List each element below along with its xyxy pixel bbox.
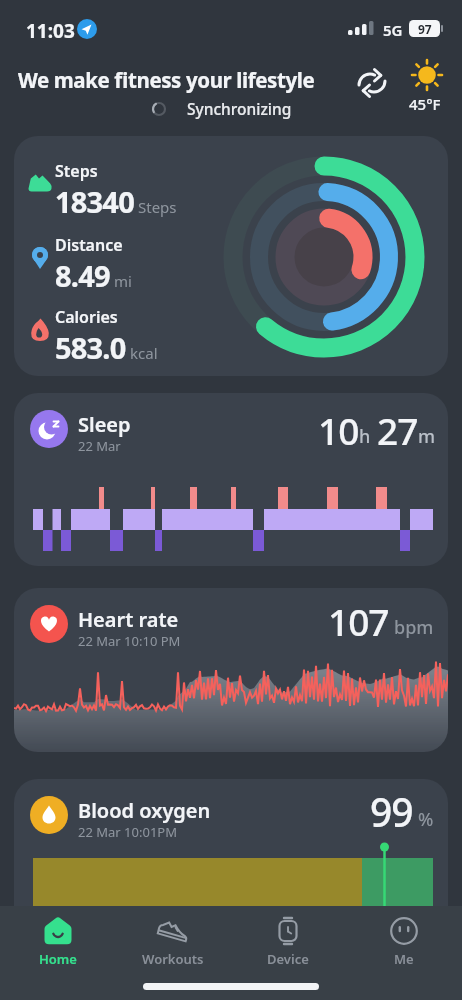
staticText: 5G (383, 20, 403, 40)
staticText: 99 (370, 785, 413, 838)
staticText: Home (39, 950, 77, 968)
staticText: 27 (377, 405, 418, 455)
button[interactable]: Blood oxygen (14, 779, 448, 949)
button[interactable]: Heart rate (14, 588, 448, 752)
staticText: Blood oxygen (78, 797, 211, 824)
staticText: 11:03 (26, 18, 75, 44)
staticText: 8.49 (55, 256, 110, 295)
button[interactable]: Sleep (14, 393, 448, 566)
staticText: 107 (328, 596, 389, 646)
button[interactable]: Steps (14, 136, 448, 376)
staticText: m (418, 424, 436, 449)
staticText: h (359, 424, 371, 449)
staticText: 97 (418, 21, 432, 37)
staticText: Distance (55, 234, 123, 256)
button[interactable]: 45°F (402, 58, 452, 114)
staticText: 10 (318, 405, 359, 455)
staticText: 22 Mar 10:01PM (78, 823, 177, 841)
staticText: % (418, 807, 434, 832)
staticText: 45°F (409, 94, 441, 114)
button[interactable]: Device (230, 912, 346, 968)
staticText: Heart rate (78, 606, 179, 633)
staticText: Synchronizing (187, 98, 292, 119)
staticText: 22 Mar (78, 437, 121, 455)
staticText: Steps (55, 160, 98, 182)
button[interactable]: Me (346, 912, 462, 968)
staticText: 18340 (55, 182, 134, 221)
staticText: Steps (138, 197, 177, 217)
staticText: Me (394, 950, 414, 968)
staticText: We make fitness your lifestyle (18, 66, 315, 94)
button[interactable]: Home (0, 912, 115, 968)
staticText: kcal (130, 343, 158, 363)
button[interactable] (356, 67, 388, 99)
staticText: 22 Mar 10:10 PM (78, 632, 181, 650)
staticText: Sleep (78, 411, 131, 438)
button[interactable]: Workouts (115, 912, 230, 968)
staticText: 583.0 (55, 328, 126, 367)
staticText: bpm (394, 615, 434, 640)
staticText: mi (114, 271, 132, 291)
staticText: Device (267, 950, 309, 968)
staticText: Calories (55, 306, 118, 328)
staticText: Workouts (142, 950, 204, 968)
